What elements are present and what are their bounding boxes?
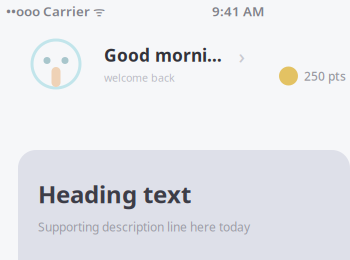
staticText: Heading text xyxy=(38,178,191,210)
staticText: welcome back xyxy=(104,70,175,85)
button[interactable]: Good morning xyxy=(0,22,350,106)
staticText: › xyxy=(238,43,245,69)
staticText: Good morning xyxy=(104,43,222,66)
staticText: ••ooo Carrier ᯤ xyxy=(6,2,105,20)
staticText: 250 pts xyxy=(304,68,346,84)
staticText: 9:41 AM xyxy=(212,2,264,20)
staticText: Supporting description line here today xyxy=(38,219,250,235)
button[interactable]: Heading text xyxy=(18,150,350,260)
